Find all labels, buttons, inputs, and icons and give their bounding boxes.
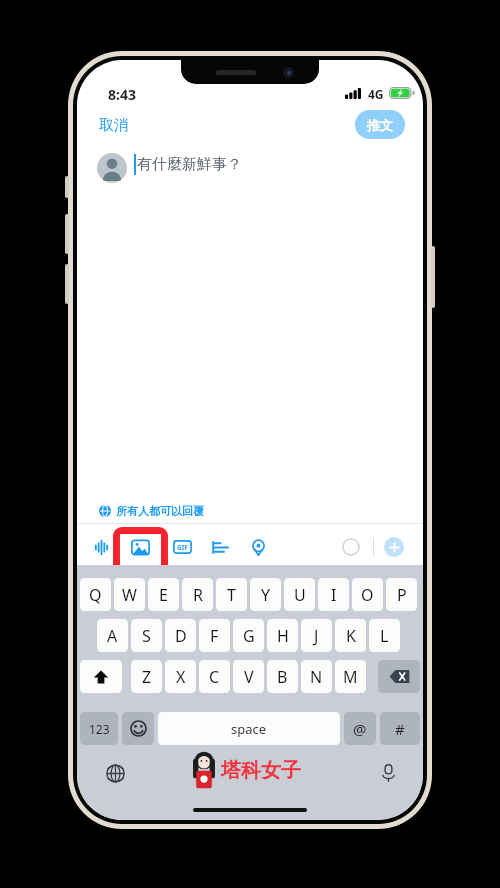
staticText: U <box>294 584 306 606</box>
button[interactable]: P <box>386 578 417 611</box>
staticText: 取消 <box>99 116 129 135</box>
staticText: G <box>243 625 255 647</box>
button[interactable]: Delete <box>378 660 420 693</box>
staticText: X <box>176 666 186 688</box>
staticText: L <box>380 625 389 647</box>
button[interactable]: Q <box>80 578 111 611</box>
button[interactable]: Y <box>250 578 281 611</box>
staticText: N <box>310 666 323 688</box>
button[interactable]: Character count <box>342 538 360 556</box>
button[interactable]: Voice <box>88 534 114 560</box>
button[interactable]: S <box>131 619 162 652</box>
button[interactable]: B <box>267 660 298 693</box>
button[interactable]: C <box>199 660 230 693</box>
staticText: 123 <box>89 721 110 737</box>
staticText: A <box>107 625 118 647</box>
staticText: # <box>395 719 405 739</box>
button[interactable]: I <box>318 578 349 611</box>
button[interactable]: Shift <box>80 660 122 693</box>
staticText: S <box>142 625 151 647</box>
button[interactable]: # <box>380 712 420 745</box>
staticText: C <box>209 666 220 688</box>
button[interactable]: X <box>165 660 196 693</box>
staticText: W <box>122 584 137 606</box>
button[interactable]: Z <box>131 660 162 693</box>
button[interactable]: Emoji <box>122 712 154 745</box>
staticText: B <box>277 666 288 688</box>
button[interactable]: D <box>165 619 196 652</box>
button[interactable]: H <box>267 619 298 652</box>
button[interactable]: space <box>158 712 340 745</box>
button[interactable]: O <box>352 578 383 611</box>
button[interactable]: K <box>335 619 366 652</box>
staticText: Q <box>89 584 102 606</box>
staticText: I <box>331 584 337 606</box>
button[interactable]: G <box>233 619 264 652</box>
button[interactable]: E <box>148 578 179 611</box>
staticText: 所有人都可以回覆 <box>116 504 204 518</box>
staticText: F <box>210 625 219 647</box>
staticText: D <box>175 625 187 647</box>
button[interactable]: T <box>216 578 247 611</box>
button[interactable]: W <box>114 578 145 611</box>
staticText: J <box>314 625 319 647</box>
staticText: 8:43 <box>108 85 136 104</box>
staticText: 有什麼新鮮事？ <box>137 155 242 174</box>
button[interactable]: 123 <box>80 712 118 745</box>
button[interactable]: Add photo <box>127 534 153 560</box>
button[interactable]: 取消 <box>94 112 134 139</box>
button[interactable]: Poll <box>207 534 233 560</box>
button[interactable]: Add Tweet <box>384 537 404 557</box>
staticText: Y <box>261 584 271 606</box>
button[interactable]: L <box>369 619 400 652</box>
staticText: O <box>361 584 374 606</box>
staticText: T <box>227 584 236 606</box>
button[interactable]: Change keyboard <box>100 758 130 788</box>
staticText: R <box>193 584 203 606</box>
button[interactable]: A <box>97 619 128 652</box>
button[interactable]: N <box>301 660 332 693</box>
button[interactable]: R <box>182 578 213 611</box>
staticText: K <box>346 625 356 647</box>
button[interactable]: 推文 <box>355 110 405 139</box>
button[interactable]: GIF <box>169 534 195 560</box>
button[interactable]: M <box>335 660 366 693</box>
button[interactable]: F <box>199 619 230 652</box>
staticText: space <box>231 720 267 738</box>
button[interactable]: J <box>301 619 332 652</box>
button[interactable]: U <box>284 578 315 611</box>
button[interactable]: @ <box>344 712 376 745</box>
button[interactable]: V <box>233 660 264 693</box>
staticText: GIF <box>177 543 188 552</box>
staticText: Z <box>142 666 152 688</box>
staticText: P <box>397 584 407 606</box>
staticText: 推文 <box>367 117 393 133</box>
staticText: V <box>244 666 254 688</box>
button[interactable]: Dictation <box>373 758 403 788</box>
button[interactable]: 所有人都可以回覆 <box>96 501 207 521</box>
button[interactable]: Location <box>245 534 271 560</box>
staticText: 4G <box>368 86 384 102</box>
staticText: H <box>277 625 289 647</box>
staticText: 塔科女子 <box>221 758 301 783</box>
staticText: E <box>159 584 168 606</box>
staticText: M <box>343 666 358 688</box>
staticText: @ <box>353 719 367 739</box>
